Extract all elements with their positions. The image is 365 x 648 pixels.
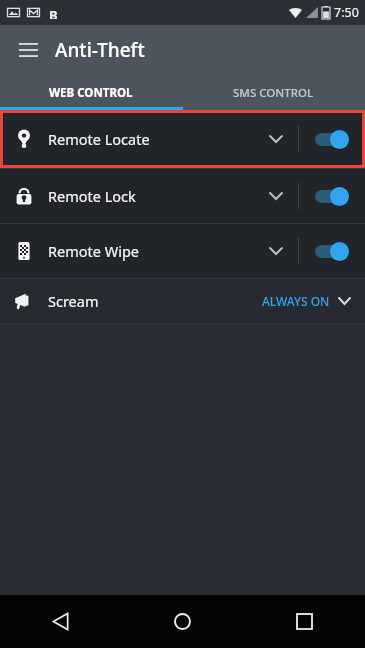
button[interactable]: Home	[121, 595, 243, 648]
staticText: Scream	[48, 291, 99, 311]
button[interactable]: SMS CONTROL	[182, 75, 365, 110]
staticText: ALWAYS ON	[262, 293, 330, 309]
staticText: Anti-Theft	[55, 37, 145, 63]
button[interactable]: Open navigation menu	[8, 30, 48, 70]
button[interactable]: Toggle Remote Locate	[299, 110, 365, 168]
button[interactable]: Remote Wipe	[0, 224, 365, 278]
button[interactable]: Back	[0, 595, 121, 648]
button[interactable]: Toggle Remote Wipe	[299, 224, 365, 278]
button[interactable]: Remote Locate	[0, 110, 365, 168]
button[interactable]: Remote Lock	[0, 169, 365, 223]
staticText: Remote Locate	[48, 129, 150, 149]
button[interactable]: WEB CONTROL	[0, 75, 182, 110]
button[interactable]: Expand Remote Lock options	[254, 174, 298, 218]
staticText: Remote Wipe	[48, 241, 140, 261]
staticText: SMS CONTROL	[233, 85, 314, 101]
button[interactable]: Expand Remote Wipe options	[254, 229, 298, 273]
staticText: Remote Lock	[48, 186, 136, 206]
button[interactable]: Toggle Remote Lock	[299, 169, 365, 223]
staticText: B	[49, 6, 58, 19]
staticText: 7:50	[334, 4, 359, 21]
button[interactable]: Scream	[0, 279, 365, 323]
staticText: WEB CONTROL	[49, 85, 133, 101]
button[interactable]: Recent apps	[243, 595, 365, 648]
button[interactable]: Expand Remote Locate options	[254, 117, 298, 161]
